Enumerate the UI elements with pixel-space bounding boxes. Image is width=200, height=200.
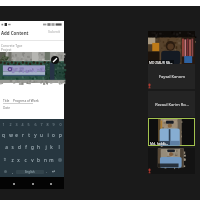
button[interactable]: h: [36, 141, 41, 153]
staticText: y: [34, 132, 37, 138]
button[interactable]: Submit: [48, 29, 61, 34]
button[interactable]: a: [4, 141, 9, 153]
staticText: 8: [46, 122, 49, 127]
button[interactable]: Microphone muted: [148, 148, 195, 174]
staticText: i: [47, 132, 49, 138]
staticText: 4: [21, 122, 24, 127]
button[interactable]: Faysal Kanom: [148, 64, 195, 89]
button[interactable]: u: [39, 129, 44, 141]
button[interactable]: Attach photo: [51, 56, 59, 64]
button[interactable]: 4: [20, 119, 25, 129]
button[interactable]: s: [10, 141, 15, 153]
staticText: v: [31, 157, 34, 163]
button[interactable]: 9: [51, 119, 56, 129]
staticText: Title: [3, 99, 10, 103]
staticText: Date: [3, 106, 11, 110]
button[interactable]: Rezaul Karim Ro...: [148, 91, 195, 117]
button[interactable]: MD ZIAUR RA...: [148, 31, 195, 64]
staticText: d: [18, 144, 21, 150]
staticText: k: [50, 144, 53, 150]
staticText: b: [37, 157, 40, 163]
staticText: j: [45, 144, 47, 150]
staticText: c: [24, 157, 27, 163]
staticText: f: [25, 144, 27, 150]
button[interactable]: Navigation: [9, 179, 18, 188]
button[interactable]: 8: [45, 119, 50, 129]
staticText: 2: [9, 122, 12, 127]
staticText: Rezaul Karim Ro...: [155, 102, 189, 107]
button[interactable]: 0: [58, 119, 63, 129]
staticText: m: [49, 157, 54, 163]
staticText: z: [11, 157, 14, 163]
button[interactable]: 1: [1, 119, 6, 129]
button[interactable]: English: [16, 170, 44, 174]
button[interactable]: i: [45, 129, 50, 141]
staticText: English: [25, 170, 35, 174]
button[interactable]: g: [30, 141, 35, 153]
button[interactable]: 2: [8, 119, 13, 129]
staticText: Project: [1, 48, 12, 52]
button[interactable]: b: [36, 157, 41, 163]
staticText: 9: [52, 122, 55, 127]
button[interactable]: r: [20, 129, 25, 141]
button[interactable]: Backspace: [56, 158, 63, 162]
staticText: t: [28, 132, 30, 138]
staticText: u: [40, 132, 43, 138]
button[interactable]: Add Content: [0, 21, 64, 189]
button[interactable]: Md. habib...: [148, 118, 195, 146]
button[interactable]: j: [43, 141, 48, 153]
staticText: w: [9, 132, 13, 138]
button[interactable]: t: [26, 129, 31, 141]
staticText: Add Content: [1, 30, 29, 36]
button[interactable]: Navigation: [46, 179, 55, 188]
staticText: 3: [15, 122, 18, 127]
button[interactable]: l: [56, 141, 61, 153]
button[interactable]: p: [58, 129, 63, 141]
button[interactable]: y: [33, 129, 38, 141]
button[interactable]: w: [8, 129, 13, 141]
button[interactable]: m: [49, 157, 54, 163]
staticText: h: [37, 144, 40, 150]
button[interactable]: Emoji: [1, 170, 9, 173]
staticText: 6: [34, 122, 37, 127]
button[interactable]: 5: [26, 119, 31, 129]
staticText: q: [2, 132, 5, 138]
button[interactable]: 7: [39, 119, 44, 129]
staticText: p: [59, 132, 62, 138]
button[interactable]: v: [30, 157, 35, 163]
button[interactable]: x: [16, 157, 21, 163]
staticText: Progress of Work: [13, 99, 39, 103]
staticText: .: [46, 169, 48, 174]
staticText: ⇧: [3, 157, 7, 162]
staticText: e: [15, 132, 18, 138]
staticText: MD ZIAUR RA...: [149, 60, 173, 64]
button[interactable]: o: [51, 129, 56, 141]
button[interactable]: k: [49, 141, 54, 153]
button[interactable]: d: [17, 141, 22, 153]
button[interactable]: f: [23, 141, 28, 153]
staticText: s: [11, 144, 14, 150]
button[interactable]: Navigation: [28, 179, 37, 188]
button[interactable]: q: [1, 129, 6, 141]
staticText: Faysal Kanom: [159, 74, 185, 79]
staticText: Md. habib...: [150, 141, 169, 145]
button[interactable]: e: [14, 129, 19, 141]
staticText: a: [5, 144, 8, 150]
staticText: ,: [12, 169, 14, 174]
staticText: x: [17, 157, 20, 163]
button[interactable]: 3: [14, 119, 19, 129]
staticText: 5: [27, 122, 30, 127]
button[interactable]: z: [10, 157, 15, 163]
staticText: g: [31, 144, 34, 150]
button[interactable]: n: [43, 157, 48, 163]
staticText: l: [58, 144, 60, 150]
staticText: 0: [59, 122, 62, 127]
other: Microphone muted: [147, 168, 152, 174]
staticText: ↵: [52, 169, 56, 174]
button[interactable]: c: [23, 157, 28, 163]
button[interactable]: Enter: [50, 169, 58, 174]
button[interactable]: 6: [33, 119, 38, 129]
staticText: 7: [40, 122, 43, 127]
staticText: Concrete Type: [1, 44, 23, 48]
staticText: 1: [2, 122, 5, 127]
